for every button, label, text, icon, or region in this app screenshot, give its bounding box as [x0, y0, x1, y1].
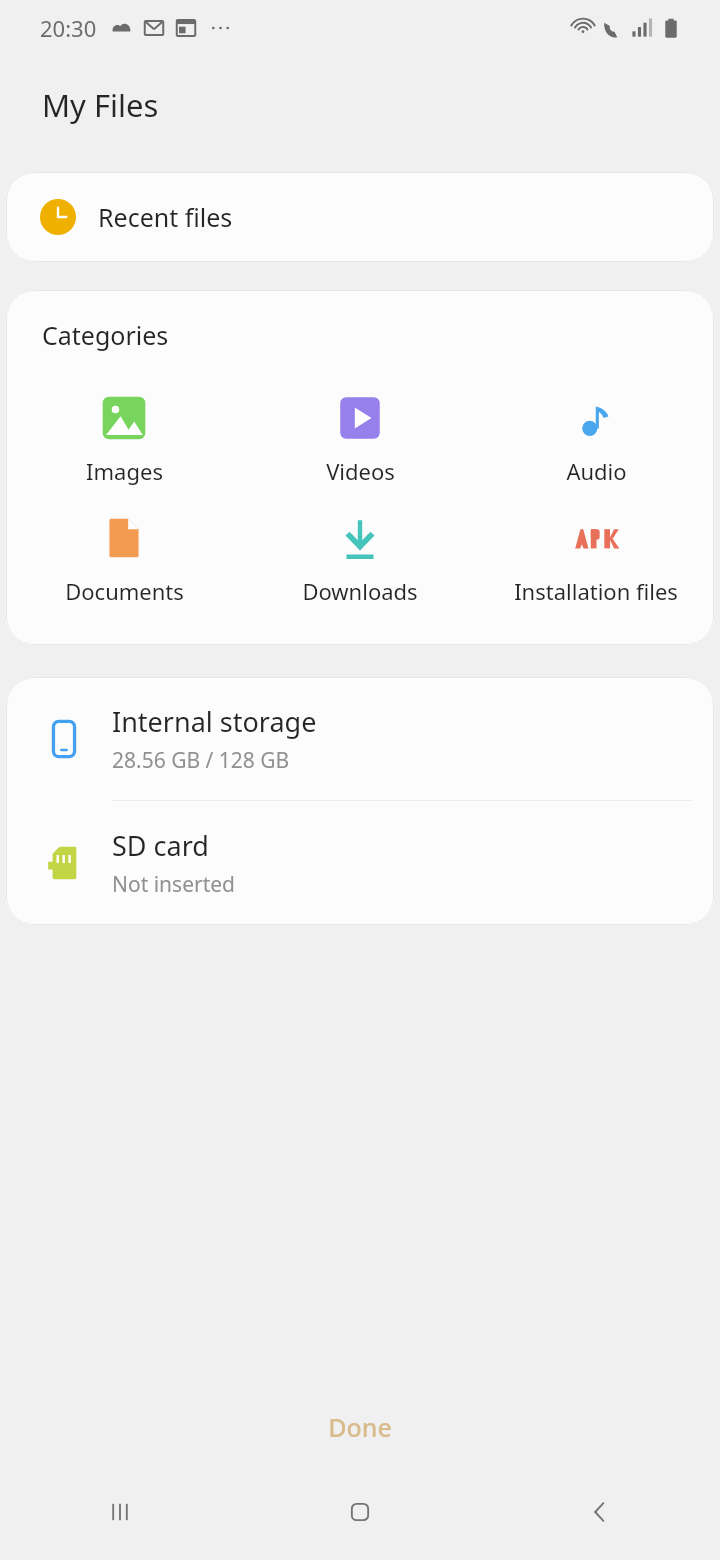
button[interactable]: Downloads — [242, 512, 478, 606]
staticText: Internal storage — [112, 703, 317, 740]
staticText: Documents — [65, 576, 184, 606]
staticText: My Files — [42, 84, 159, 126]
staticText: 20:30 — [40, 13, 97, 43]
button[interactable]: Installation files — [478, 512, 714, 606]
button[interactable]: Done — [0, 1404, 720, 1450]
button[interactable]: Internal storage — [6, 677, 714, 800]
button[interactable]: Recent apps — [0, 1464, 240, 1560]
button[interactable]: Videos — [242, 392, 478, 486]
button[interactable]: Audio — [478, 392, 714, 486]
staticText: Audio — [566, 456, 627, 486]
button[interactable]: SD card — [6, 801, 714, 924]
button[interactable]: Home — [240, 1464, 480, 1560]
button[interactable]: Recent files — [6, 172, 714, 262]
staticText: Installation files — [514, 576, 678, 606]
staticText: Not inserted — [112, 870, 236, 899]
button[interactable]: Documents — [6, 512, 242, 606]
staticText: Downloads — [302, 576, 418, 606]
staticText: 28.56 GB / 128 GB — [112, 746, 290, 775]
staticText: Videos — [326, 456, 395, 486]
button[interactable]: Images — [6, 392, 242, 486]
staticText: Images — [86, 456, 163, 486]
staticText: Categories — [42, 318, 169, 352]
staticText: Recent files — [98, 200, 233, 234]
button[interactable]: Back — [480, 1464, 720, 1560]
staticText: SD card — [112, 827, 209, 864]
